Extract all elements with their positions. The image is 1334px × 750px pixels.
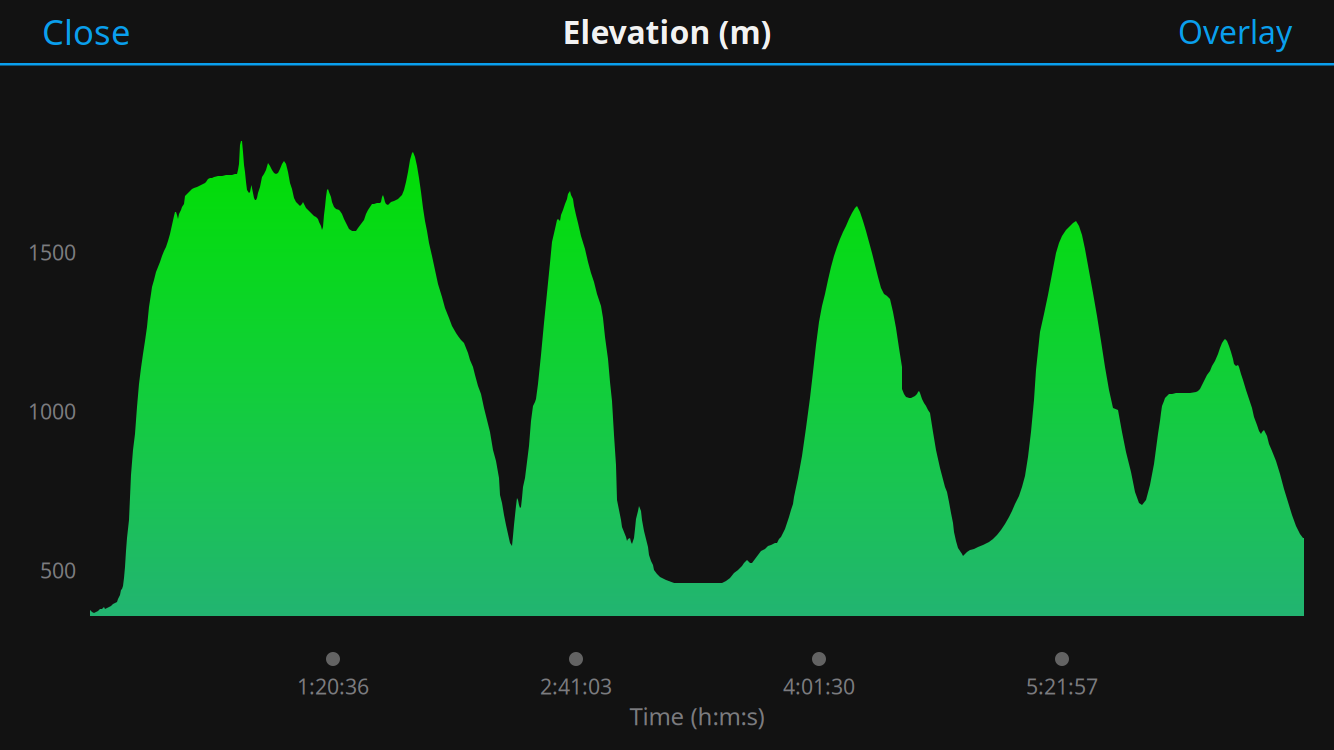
- staticText: Elevation (m): [562, 10, 771, 53]
- staticText: Overlay: [1178, 10, 1292, 53]
- staticText: Close: [42, 8, 131, 54]
- staticText: 2:41:03: [540, 672, 612, 700]
- staticText: 1500: [28, 238, 76, 266]
- staticText: 500: [40, 556, 76, 584]
- button[interactable]: Close: [24, 0, 149, 66]
- staticText: 4:01:30: [783, 672, 855, 700]
- staticText: 5:21:57: [1026, 672, 1098, 700]
- button[interactable]: Overlay: [1160, 0, 1310, 65]
- staticText: Time (h:m:s): [629, 700, 764, 732]
- staticText: 1:20:36: [297, 672, 369, 700]
- staticText: 1000: [28, 397, 76, 425]
